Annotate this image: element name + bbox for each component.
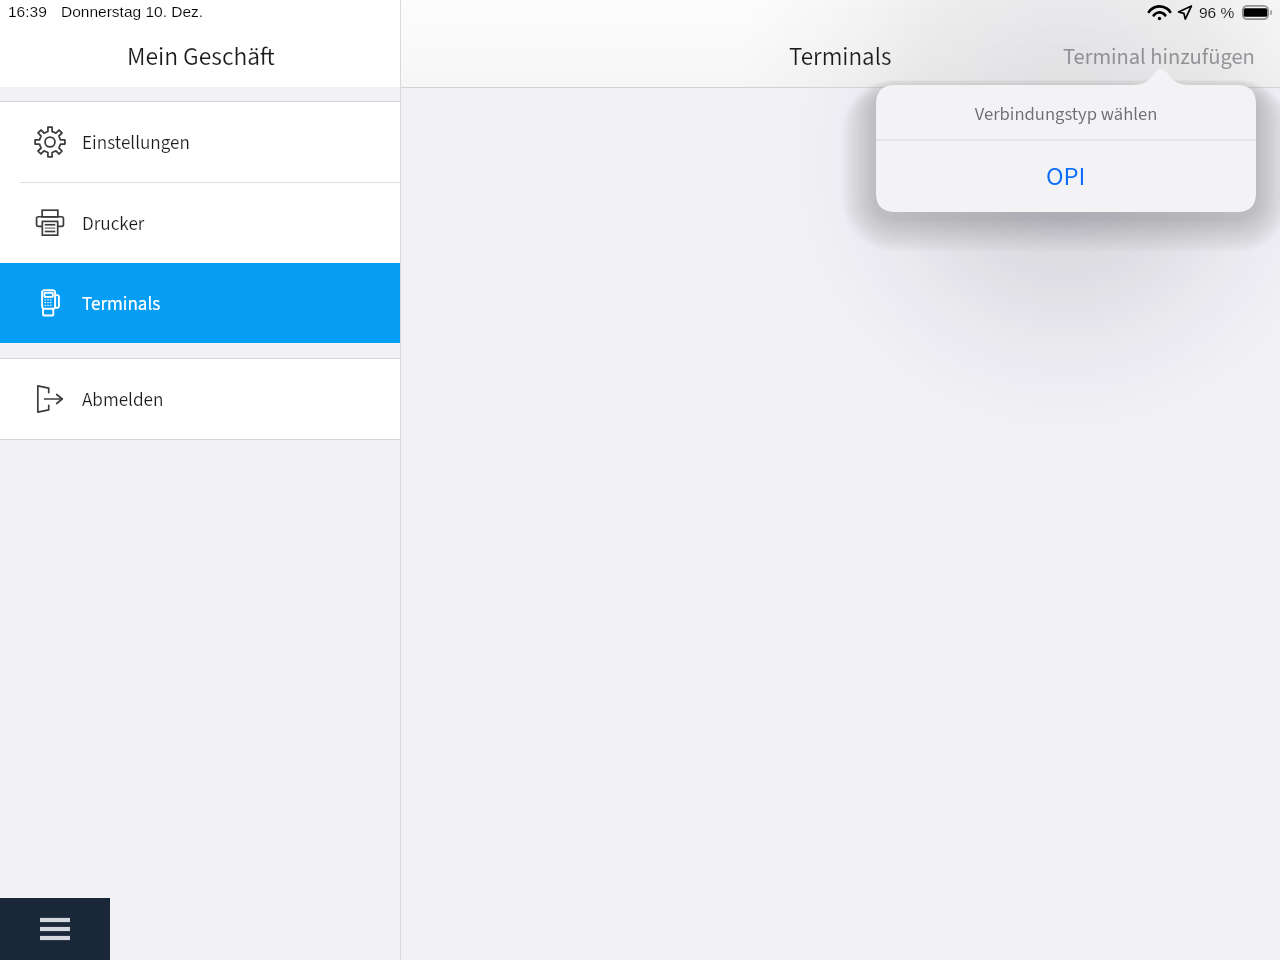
button[interactable]: Terminals (0, 263, 401, 343)
staticText: Terminals (82, 290, 161, 317)
staticText: Terminals (789, 39, 892, 75)
button[interactable]: OPI (876, 141, 1256, 212)
staticText: Drucker (82, 210, 145, 237)
staticText: Einstellungen (82, 129, 190, 156)
button[interactable]: Einstellungen (0, 102, 401, 182)
button[interactable]: Drucker (0, 183, 401, 263)
staticText: 96 % (1199, 4, 1235, 21)
button[interactable]: Terminal hinzufügen (1063, 41, 1255, 73)
staticText: Donnerstag 10. Dez. (61, 3, 204, 20)
staticText: Verbindungstyp wählen (876, 101, 1256, 127)
staticText: 16:39 (8, 3, 47, 20)
button[interactable]: Menu (0, 898, 110, 960)
staticText: OPI (1046, 158, 1086, 196)
button[interactable]: Abmelden (0, 359, 401, 439)
staticText: Abmelden (82, 386, 164, 413)
staticText: Mein Geschäft (127, 39, 275, 75)
